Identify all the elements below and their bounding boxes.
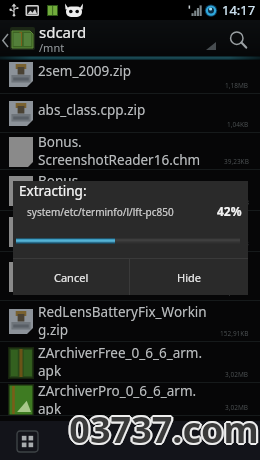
staticText: 14:17 xyxy=(222,1,256,19)
staticText: 03737.com xyxy=(67,405,257,454)
staticText: Bonus. xyxy=(38,172,82,190)
staticText: Openssl.zip xyxy=(38,264,111,282)
staticText: Extracting: xyxy=(19,182,87,200)
button[interactable]: RedLensBatteryFix_Workin xyxy=(0,301,260,342)
button[interactable]: Up xyxy=(0,20,10,60)
staticText: 27,14MB xyxy=(222,239,249,248)
staticText: system/etc/terminfo/l/lft-pc850 xyxy=(27,205,174,219)
staticText: 39,23KB xyxy=(224,198,249,207)
staticText: Hide xyxy=(177,270,201,285)
staticText: 1,04KB xyxy=(227,120,249,129)
staticText: /mnt xyxy=(39,40,65,55)
button[interactable]: Openssl.zip xyxy=(0,252,260,301)
staticText: Bonus. xyxy=(38,133,82,151)
button[interactable]: Search xyxy=(224,20,256,60)
staticText: ZArchiverPro_0_6_6_arm. xyxy=(38,382,197,400)
button[interactable]: Cancel xyxy=(13,259,129,295)
staticText: 03737.com xyxy=(69,407,259,456)
staticText: 03737.com xyxy=(69,405,259,454)
staticText: 39,23KB xyxy=(224,157,249,166)
button[interactable]: ZArchiverPro_0_6_6_arm. xyxy=(0,383,260,416)
staticText: 03737.com xyxy=(68,406,258,455)
staticText: 152,91KB xyxy=(220,329,249,338)
staticText: 03737.com xyxy=(68,404,258,453)
button[interactable]: Apps xyxy=(14,428,40,454)
staticText: 03737.com xyxy=(71,405,260,454)
staticText: apk xyxy=(38,362,62,380)
button[interactable]: abs_class.cpp.zip xyxy=(0,94,260,133)
staticText: 03737.com xyxy=(69,404,259,453)
button[interactable]: Hide xyxy=(130,259,248,295)
staticText: 1,22MB xyxy=(225,288,249,297)
button[interactable]: Firefox_26.0.apk xyxy=(0,211,260,252)
staticText: ScreenshotReader16(1).chm xyxy=(38,190,217,208)
staticText: ZArchiverFree_0_6_6_arm. xyxy=(38,344,203,362)
staticText: 42% xyxy=(217,203,242,219)
staticText: 1,18MB xyxy=(225,81,249,90)
staticText: apk xyxy=(38,400,62,415)
staticText: g.zip xyxy=(38,321,69,339)
button[interactable]: Bonus. xyxy=(0,170,260,211)
staticText: 03737.com xyxy=(69,406,259,455)
button[interactable]: 2sem_2009.zip xyxy=(0,55,260,94)
staticText: RedLensBatteryFix_Workin xyxy=(38,303,207,321)
staticText: 03737.com xyxy=(70,406,260,455)
staticText: 03737.com xyxy=(70,405,260,454)
staticText: 03737.com xyxy=(69,403,259,452)
staticText: 03737.com xyxy=(70,404,260,453)
staticText: 03737.com xyxy=(68,405,258,454)
staticText: 2sem_2009.zip xyxy=(38,62,132,80)
staticText: 3,02MB xyxy=(225,403,249,412)
staticText: sdcard xyxy=(39,22,87,42)
button[interactable]: ZArchiverFree_0_6_6_arm. xyxy=(0,342,260,383)
button[interactable]: Bonus. xyxy=(0,133,260,170)
staticText: Cancel xyxy=(54,270,89,285)
staticText: ScreenshotReader16.chm xyxy=(38,151,201,169)
button[interactable]: More options xyxy=(200,20,222,60)
staticText: 3,02MB xyxy=(225,370,249,379)
staticText: abs_class.cpp.zip xyxy=(38,101,146,119)
